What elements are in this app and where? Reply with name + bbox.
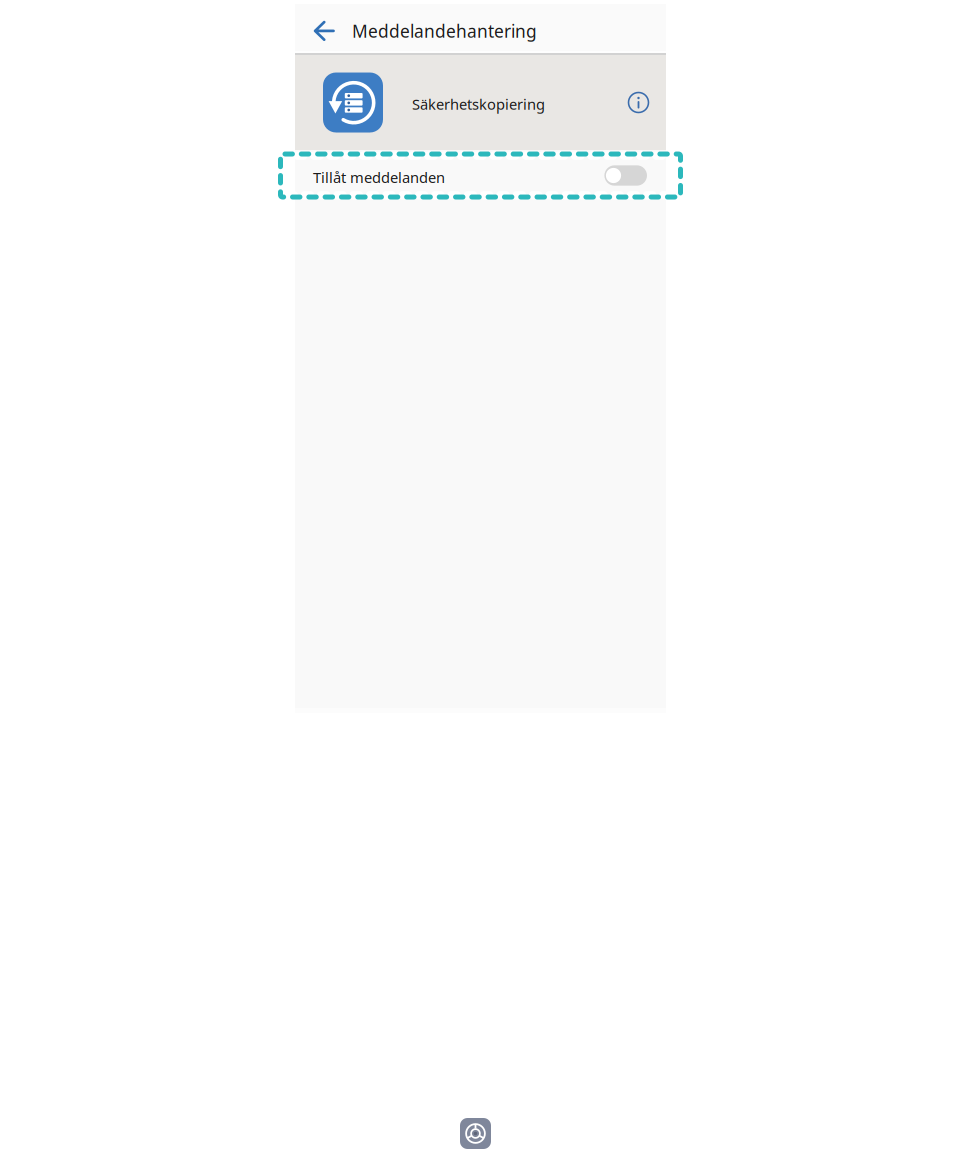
button[interactable]: Tillåt meddelanden — [295, 150, 666, 198]
staticText: Tillåt meddelanden — [313, 167, 445, 187]
button[interactable]: Back — [301, 4, 349, 51]
button[interactable]: Information — [620, 55, 657, 150]
staticText: Säkerhetskopiering — [412, 94, 545, 114]
staticText: Meddelandehantering — [352, 19, 537, 42]
